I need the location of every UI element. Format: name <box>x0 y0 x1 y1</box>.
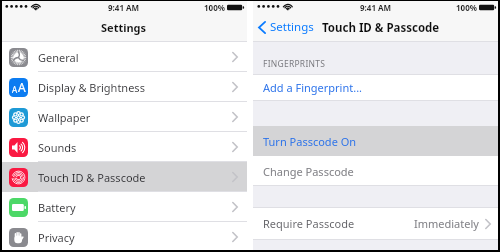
staticText: Change Passcode <box>263 164 354 179</box>
button[interactable]: General <box>1 42 247 72</box>
button[interactable]: Settings <box>253 13 318 42</box>
staticText: FINGERPRINTS <box>263 58 326 70</box>
staticText: Privacy <box>38 230 75 245</box>
staticText: A <box>18 79 26 95</box>
button[interactable]: Touch ID & Passcode <box>1 162 247 192</box>
staticText: Touch ID & Passcode <box>38 170 146 185</box>
staticText: Immediately <box>414 216 479 231</box>
button[interactable]: Change Passcode <box>253 156 499 186</box>
staticText: 100% <box>456 2 477 13</box>
staticText: 100% <box>204 2 225 13</box>
staticText: Turn Passcode On <box>263 134 357 149</box>
button[interactable]: Privacy <box>1 222 247 252</box>
staticText: General <box>38 50 79 65</box>
staticText: Touch ID & Passcode <box>322 20 440 36</box>
staticText: Settings <box>101 20 147 35</box>
button[interactable]: Wallpaper <box>1 102 247 132</box>
button[interactable]: Sounds <box>1 132 247 162</box>
staticText: Add a Fingerprint... <box>263 80 363 95</box>
button[interactable]: Add a Fingerprint... <box>253 74 499 101</box>
staticText: 9:41 AM <box>360 2 392 13</box>
staticText: Settings <box>270 19 314 35</box>
button[interactable]: Turn Passcode On <box>253 126 499 156</box>
staticText: Wallpaper <box>38 110 91 125</box>
staticText: A <box>12 84 18 95</box>
staticText: Battery <box>38 200 76 215</box>
staticText: Require Passcode <box>263 216 355 231</box>
staticText: Sounds <box>38 140 77 155</box>
button[interactable]: Require Passcode <box>253 207 499 240</box>
button[interactable]: Battery <box>1 192 247 222</box>
staticText: 9:41 AM <box>108 2 140 13</box>
staticText: Display & Brightness <box>38 80 145 95</box>
button[interactable]: A <box>1 72 247 102</box>
